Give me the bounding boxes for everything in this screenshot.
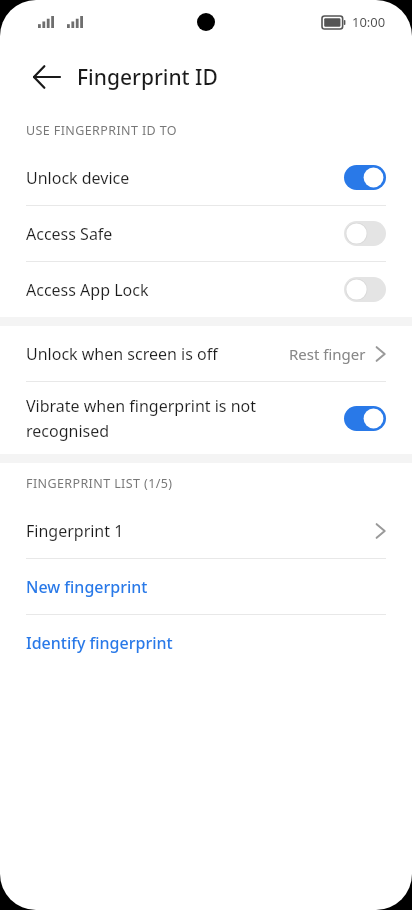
- staticText: 10:00: [352, 13, 386, 31]
- staticText: Vibrate when fingerprint is not recognis…: [26, 395, 344, 441]
- staticText: Access App Lock: [26, 279, 344, 301]
- staticText: Fingerprint ID: [77, 63, 218, 92]
- staticText: Fingerprint 1: [26, 520, 375, 542]
- button[interactable]: Unlock when screen is off: [0, 326, 412, 381]
- button[interactable]: Unlock device: [0, 150, 412, 205]
- button[interactable]: Identify fingerprint: [0, 615, 412, 670]
- button[interactable]: Back: [24, 55, 68, 99]
- staticText: Access Safe: [26, 223, 344, 245]
- staticText: FINGERPRINT LIST (1/5): [26, 475, 173, 492]
- button[interactable]: Fingerprint 1: [0, 503, 412, 558]
- staticText: USE FINGERPRINT ID TO: [26, 122, 178, 139]
- button[interactable]: New fingerprint: [0, 559, 412, 614]
- staticText: Unlock device: [26, 167, 344, 189]
- staticText: Rest finger: [289, 344, 366, 364]
- staticText: New fingerprint: [26, 576, 386, 598]
- staticText: Unlock when screen is off: [26, 343, 289, 365]
- button[interactable]: Access Safe: [0, 206, 412, 261]
- button[interactable]: Vibrate when fingerprint is not recognis…: [0, 382, 412, 454]
- staticText: Identify fingerprint: [26, 632, 386, 654]
- button[interactable]: Access App Lock: [0, 262, 412, 317]
